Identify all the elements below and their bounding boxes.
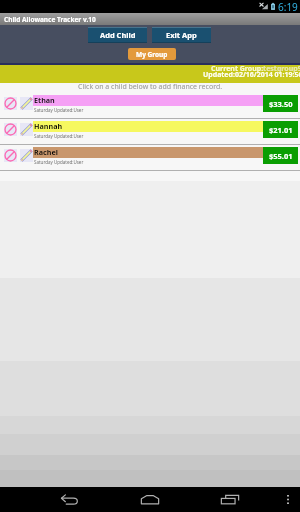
button[interactable]: Delete Rachel — [4, 149, 17, 162]
staticText: Saturday Updated:User — [34, 159, 84, 165]
button[interactable]: Edit Hannah — [20, 123, 33, 136]
staticText: Exit App — [166, 30, 197, 40]
button[interactable]: Rachel — [0, 145, 300, 171]
button[interactable]: Delete Hannah — [4, 123, 17, 136]
button[interactable]: Recent apps — [210, 487, 250, 512]
staticText: Saturday Updated:User — [34, 133, 84, 139]
staticText: Ethan — [34, 95, 55, 105]
button[interactable]: Edit Ethan — [20, 97, 33, 110]
button[interactable]: Edit Rachel — [20, 149, 33, 162]
staticText: Current Group:testgroup9 — [211, 64, 300, 74]
staticText: $33.50 — [269, 99, 293, 109]
staticText: My Group — [136, 50, 168, 59]
staticText: Rachel — [34, 147, 58, 157]
button[interactable]: More options — [278, 487, 298, 512]
staticText: Child Allowance Tracker v.10 — [4, 15, 96, 24]
button[interactable]: Home — [130, 487, 170, 512]
staticText: Add Child — [100, 30, 136, 40]
button[interactable]: Hannah — [0, 119, 300, 145]
staticText: $21.01 — [269, 125, 293, 135]
button[interactable]: Exit App — [152, 27, 211, 43]
staticText: Saturday Updated:User — [34, 107, 84, 113]
staticText: Click on a child below to add finance re… — [78, 82, 223, 92]
staticText: Hannah — [34, 121, 63, 131]
staticText: $55.01 — [269, 151, 293, 161]
staticText: Updated:02/16/2014 01:19:56 — [203, 70, 300, 80]
button[interactable]: Ethan — [0, 93, 300, 119]
button[interactable]: Delete Ethan — [4, 97, 17, 110]
staticText: 6:19 — [278, 0, 298, 13]
button[interactable]: Back — [49, 487, 89, 512]
button[interactable]: Add Child — [88, 27, 147, 43]
button[interactable]: My Group — [128, 48, 176, 60]
